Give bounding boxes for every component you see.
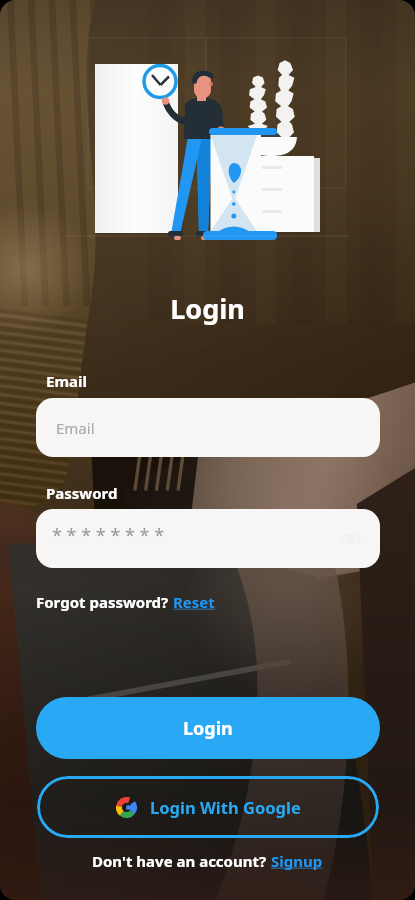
button[interactable]: Email xyxy=(36,398,380,457)
button[interactable]: Reset xyxy=(173,592,215,612)
staticText: Don't have an account? xyxy=(92,851,271,871)
staticText: Email xyxy=(46,371,87,391)
staticText: Signup xyxy=(271,851,323,871)
staticText: Login xyxy=(170,290,245,327)
staticText: Login xyxy=(183,716,233,741)
staticText: Login With Google xyxy=(150,796,301,818)
button[interactable]: * * * * * * * * xyxy=(36,509,380,568)
button[interactable]: Login With Google xyxy=(37,776,379,838)
staticText: Email xyxy=(56,418,95,438)
button[interactable]: Signup xyxy=(271,851,323,871)
staticText: Forgot password? xyxy=(36,592,173,612)
staticText: Password xyxy=(46,483,118,503)
button[interactable]: Login xyxy=(36,697,380,759)
staticText: Reset xyxy=(173,592,215,612)
staticText: * * * * * * * * xyxy=(52,523,165,548)
